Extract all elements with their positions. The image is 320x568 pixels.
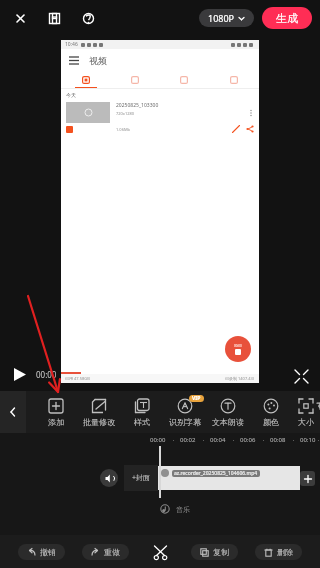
staticText: 10:46 [65,41,78,48]
button[interactable]: 删除 [255,544,302,560]
staticText: 颜色 [263,417,279,427]
button[interactable]: Volume [100,469,118,487]
button[interactable]: 添加 [34,391,77,433]
staticText: 样式 [134,417,150,427]
staticText: 识别字幕 [169,417,201,427]
button[interactable]: 复制 [191,544,238,560]
staticText: 音乐 [176,505,190,514]
staticText: 撤销 [40,547,56,557]
button[interactable]: 生成 [262,7,312,29]
staticText: 00:08 [270,436,286,444]
staticText: 重做 [104,547,120,557]
button[interactable]: Add clip [300,471,315,486]
staticText: 大小 [298,417,314,427]
staticText: 1080P [208,12,235,24]
button[interactable]: 批量修改 [77,391,120,433]
button[interactable]: 1080P [199,9,254,27]
button[interactable]: 样式 [120,391,163,433]
button[interactable]: 音乐 [160,501,320,517]
button[interactable]: Help [76,6,100,30]
staticText: 00:00 [150,436,166,444]
staticText: 00:00 [36,369,57,380]
button[interactable]: 重做 [82,544,129,560]
button[interactable]: Cut [147,539,173,565]
staticText: 720x1280 [116,111,135,116]
button[interactable]: Back [0,391,26,433]
staticText: +封面 [132,473,151,483]
staticText: 复制 [213,547,229,557]
staticText: 00:02 [180,436,196,444]
button[interactable]: Record [225,336,251,362]
button[interactable]: 颜色 [249,391,292,433]
staticText: 删除 [277,547,293,557]
staticText: 今天 [66,92,76,98]
staticText: az.recorder_20250825_104606.mp4 [174,470,258,477]
staticText: 1.06Mb [116,127,131,132]
button[interactable]: Play [8,363,30,385]
staticText: 20250825_103300 [116,102,159,109]
staticText: 添加 [48,417,64,427]
button[interactable]: +封面 [124,465,158,491]
button[interactable]: Fullscreen [290,365,312,387]
button[interactable]: 大小 [292,391,320,433]
staticText: 文本朗读 [212,417,244,427]
staticText: 00:06 [240,436,256,444]
staticText: 已用 47.58GB [65,376,90,381]
staticText: 00:10 [300,436,316,444]
staticText: 已录制 1407.43) [225,376,255,381]
staticText: 00:00 [234,344,242,348]
staticText: 视频 [89,55,107,66]
button[interactable]: 文本朗读 [206,391,249,433]
staticText: 00:04 [210,436,226,444]
button[interactable]: Close [8,6,32,30]
staticText: 生成 [276,11,298,25]
staticText: VIP [192,395,201,402]
button[interactable]: VIP [163,391,206,433]
button[interactable]: Save [42,6,66,30]
staticText: 批量修改 [83,417,115,427]
button[interactable]: 撤销 [18,544,65,560]
